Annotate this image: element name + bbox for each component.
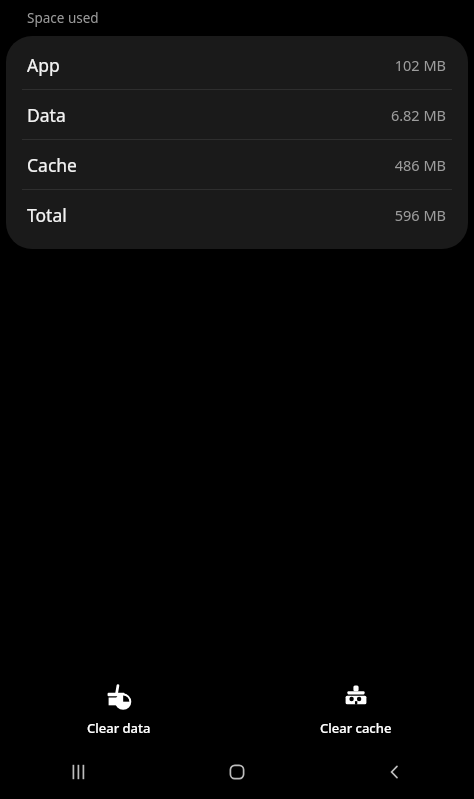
staticText: App (27, 53, 60, 77)
staticText: Cache (27, 153, 77, 177)
staticText: 102 MB (394, 55, 446, 75)
button[interactable]: Cache (6, 140, 468, 189)
button[interactable]: Clear cache (237, 675, 474, 745)
button[interactable]: Total (6, 190, 468, 239)
staticText: Total (27, 203, 67, 227)
button[interactable]: Home (158, 745, 316, 799)
button[interactable]: Data (6, 90, 468, 139)
staticText: Clear cache (320, 719, 392, 737)
staticText: Clear data (87, 719, 151, 737)
staticText: 486 MB (394, 155, 446, 175)
button[interactable]: Back (316, 745, 474, 799)
staticText: Space used (27, 9, 99, 27)
staticText: 596 MB (394, 205, 446, 225)
button[interactable]: Clear data (0, 675, 237, 745)
staticText: Data (27, 103, 66, 127)
button[interactable]: Recent apps (0, 745, 158, 799)
button[interactable]: App (6, 40, 468, 89)
staticText: 6.82 MB (390, 105, 446, 125)
